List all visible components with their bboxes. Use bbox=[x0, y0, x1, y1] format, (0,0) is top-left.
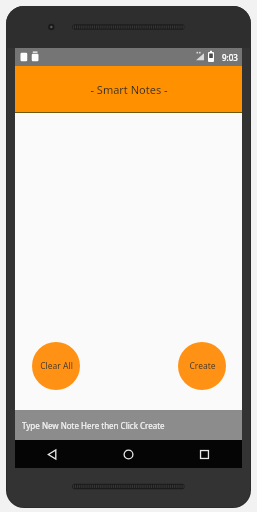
button[interactable]: Type New Note Here then Click Create bbox=[15, 410, 242, 440]
staticText: - Smart Notes - bbox=[90, 82, 168, 97]
button[interactable]: Home bbox=[90, 440, 166, 468]
staticText: 9:03 bbox=[222, 52, 238, 63]
button[interactable]: - Smart Notes - bbox=[15, 66, 242, 112]
button[interactable]: Clear All bbox=[32, 342, 80, 390]
staticText: Type New Note Here then Click Create bbox=[22, 420, 165, 431]
button[interactable]: Back bbox=[15, 440, 90, 468]
button[interactable]: Create bbox=[178, 342, 226, 390]
staticText: Clear All bbox=[40, 360, 73, 372]
button[interactable]: Recents bbox=[166, 440, 242, 468]
staticText: Create bbox=[189, 360, 216, 372]
